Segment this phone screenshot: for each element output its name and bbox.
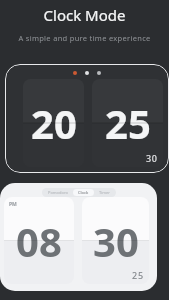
- staticText: 20: [31, 96, 77, 150]
- staticText: Clock: [78, 190, 89, 195]
- staticText: A simple and pure time experience: [0, 33, 169, 43]
- button[interactable]: Pomodoro: [0, 183, 157, 291]
- staticText: 25: [105, 96, 151, 150]
- staticText: 25: [132, 269, 144, 281]
- button[interactable]: 20: [5, 64, 169, 173]
- staticText: Clock Mode: [0, 5, 169, 25]
- button[interactable]: 20: [23, 79, 84, 167]
- staticText: Pomodoro: [48, 190, 68, 195]
- button[interactable]: 08: [4, 197, 74, 284]
- button[interactable]: 25: [92, 79, 163, 167]
- staticText: 30: [93, 214, 139, 268]
- button[interactable]: 30: [82, 197, 149, 284]
- staticText: PM: [9, 201, 17, 208]
- staticText: 30: [146, 152, 158, 164]
- button[interactable]: Timer: [94, 189, 115, 196]
- staticText: 08: [16, 214, 62, 268]
- button[interactable]: Pomodoro: [43, 189, 73, 196]
- button[interactable]: Clock: [73, 189, 94, 196]
- staticText: Timer: [99, 190, 110, 195]
